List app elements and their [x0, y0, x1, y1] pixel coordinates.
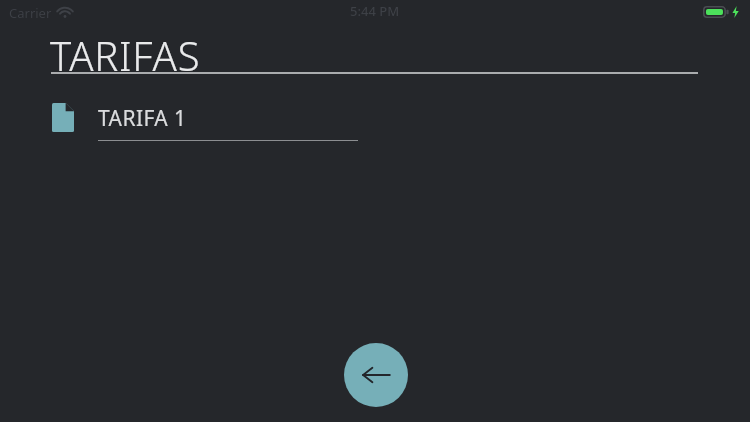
button[interactable]: TARIFA 1 [40, 96, 370, 144]
staticText: 5:44 PM [350, 2, 400, 20]
staticText: TARIFAS [50, 28, 201, 82]
staticText: TARIFA 1 [98, 104, 187, 133]
staticText: Carrier [9, 4, 52, 20]
button[interactable]: Back [344, 343, 408, 407]
